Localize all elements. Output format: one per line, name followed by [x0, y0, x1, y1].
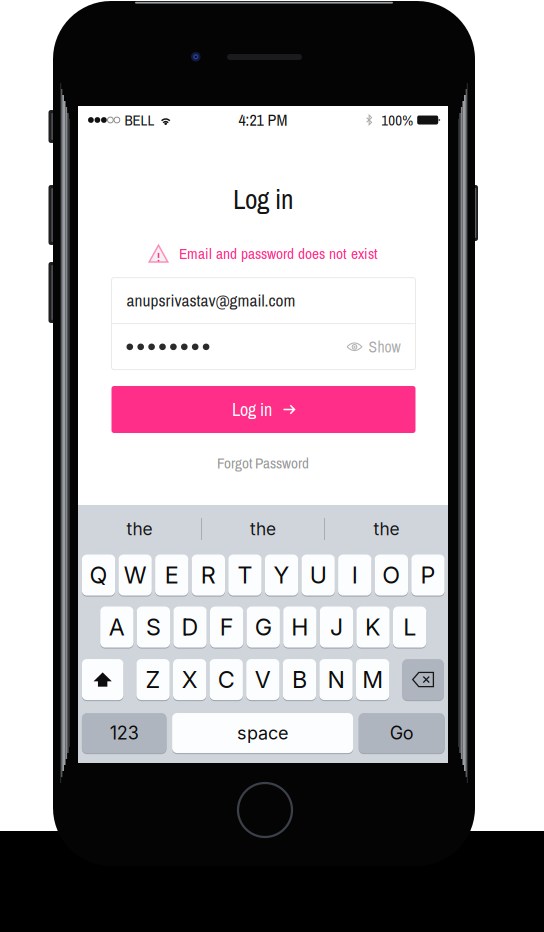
button[interactable]: N: [319, 658, 353, 701]
button[interactable]: the: [78, 505, 201, 553]
button[interactable]: U: [301, 554, 335, 596]
button[interactable]: A: [100, 606, 133, 648]
button[interactable]: C: [210, 658, 243, 701]
staticText: W: [124, 561, 147, 589]
staticText: Z: [146, 665, 161, 694]
button[interactable]: M: [356, 658, 389, 701]
staticText: K: [365, 613, 381, 641]
staticText: H: [291, 613, 308, 641]
staticText: Forgot Password: [217, 453, 309, 473]
staticText: anupsrivastav@gmail.com: [126, 289, 295, 312]
staticText: Y: [273, 561, 289, 589]
staticText: Q: [90, 561, 108, 589]
staticText: B: [292, 665, 307, 694]
staticText: O: [382, 561, 400, 589]
staticText: U: [310, 561, 327, 589]
button[interactable]: V: [246, 658, 279, 701]
staticText: Log in: [232, 397, 272, 422]
button[interactable]: K: [356, 606, 390, 648]
button[interactable]: L: [393, 606, 426, 648]
staticText: Log in: [233, 181, 293, 217]
button[interactable]: G: [247, 606, 280, 648]
button[interactable]: space: [172, 712, 353, 754]
button[interactable]: O: [375, 554, 408, 596]
button[interactable]: H: [283, 606, 316, 648]
button[interactable]: the: [325, 505, 448, 553]
button[interactable]: E: [155, 554, 188, 596]
staticText: BELL: [124, 110, 154, 130]
staticText: 100%: [381, 110, 413, 130]
button[interactable]: Z: [136, 658, 170, 701]
button[interactable]: P: [411, 554, 445, 596]
staticText: J: [330, 613, 343, 641]
staticText: the: [250, 518, 276, 539]
staticText: V: [255, 665, 271, 694]
staticText: 123: [110, 722, 139, 744]
button[interactable]: I: [338, 554, 371, 596]
staticText: Email and password does not exist: [179, 243, 378, 264]
button[interactable]: Delete: [402, 658, 444, 701]
staticText: 4:21 PM: [238, 109, 287, 131]
button[interactable]: 123: [82, 712, 166, 754]
staticText: G: [255, 613, 272, 641]
staticText: A: [109, 613, 125, 641]
staticText: N: [327, 665, 344, 694]
button[interactable]: Log in: [111, 386, 415, 433]
staticText: C: [218, 665, 235, 694]
button[interactable]: D: [173, 606, 207, 648]
button[interactable]: W: [118, 554, 152, 596]
staticText: M: [362, 665, 383, 694]
staticText: space: [237, 722, 288, 744]
button[interactable]: Y: [265, 554, 298, 596]
staticText: Go: [390, 722, 414, 744]
staticText: Show: [368, 336, 400, 357]
button[interactable]: B: [283, 658, 316, 701]
button[interactable]: T: [228, 554, 262, 596]
staticText: R: [201, 561, 216, 589]
staticText: F: [220, 613, 234, 641]
button[interactable]: J: [320, 606, 353, 648]
staticText: the: [373, 518, 399, 539]
staticText: D: [181, 613, 198, 641]
button[interactable]: Show: [346, 336, 400, 357]
staticText: E: [165, 561, 179, 589]
button[interactable]: R: [192, 554, 225, 596]
staticText: P: [420, 561, 435, 589]
staticText: S: [146, 613, 161, 641]
button[interactable]: Shift: [82, 658, 123, 701]
staticText: X: [182, 665, 198, 694]
button[interactable]: S: [137, 606, 170, 648]
button[interactable]: Go: [359, 712, 445, 754]
button[interactable]: the: [202, 505, 324, 553]
staticText: L: [403, 613, 416, 641]
button[interactable]: Forgot Password: [78, 451, 448, 475]
staticText: I: [352, 561, 358, 589]
button[interactable]: F: [210, 606, 243, 648]
button[interactable]: Q: [82, 554, 115, 596]
button[interactable]: X: [173, 658, 206, 701]
staticText: T: [237, 561, 252, 589]
staticText: the: [126, 518, 152, 539]
